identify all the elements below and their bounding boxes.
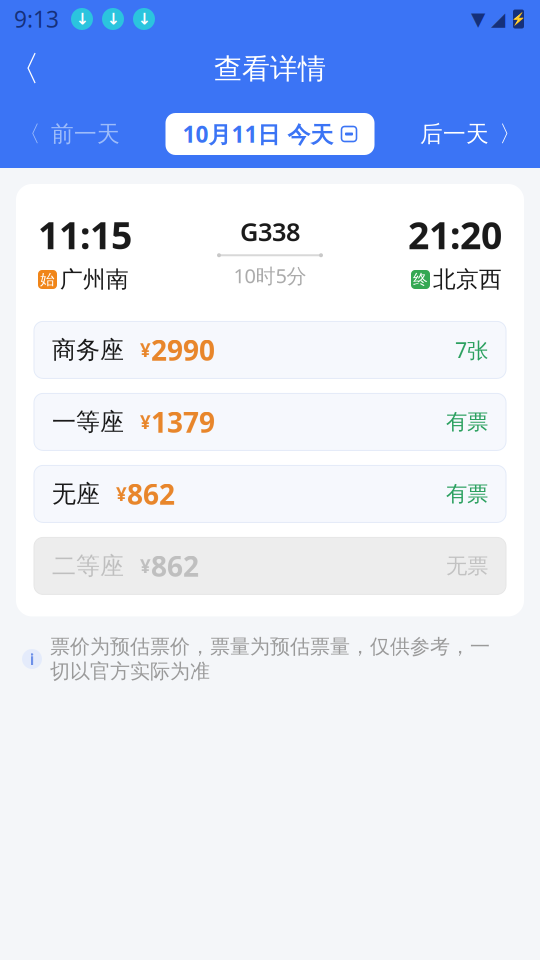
staticText: G338 [240, 215, 300, 248]
staticText: i [29, 648, 34, 670]
staticText: 查看详情 [214, 52, 326, 86]
staticText: ¥ [140, 337, 151, 362]
staticText: 后一天 [420, 120, 489, 148]
staticText: 〉 [499, 120, 522, 148]
staticText: 广州南 [60, 266, 129, 293]
staticText: 9:13 [14, 4, 59, 34]
staticText: ¥ [140, 409, 151, 434]
staticText: 862 [127, 475, 175, 512]
staticText: ↓ [137, 10, 150, 28]
button[interactable]: 二等座 [34, 537, 506, 594]
staticText: 〈 [18, 120, 41, 148]
staticText: 票价为预估票价，票量为预估票量，仅供参考，一切以官方实际为准 [50, 634, 490, 683]
staticText: ¥ [140, 553, 151, 578]
button[interactable]: 返回 [0, 46, 46, 92]
staticText: 有票 [446, 481, 488, 507]
button[interactable]: 10月11日 今天 [165, 113, 374, 155]
staticText: 11:15 [38, 210, 132, 260]
button[interactable]: 后一天 [402, 112, 540, 156]
staticText: 二等座 [52, 551, 124, 581]
button[interactable]: 〈 [0, 112, 138, 156]
staticText: 862 [151, 547, 199, 584]
staticText: ↓ [75, 10, 88, 28]
staticText: 终 [413, 270, 428, 288]
staticText: ¥ [116, 481, 127, 506]
staticText: ↓ [106, 10, 119, 28]
staticText: 无座 [52, 479, 100, 509]
staticText: ◢ [491, 8, 505, 30]
staticText: 〈 [5, 48, 40, 90]
staticText: 10月11日 今天 [182, 119, 333, 149]
button[interactable]: 一等座 [34, 393, 506, 450]
staticText: 始 [40, 270, 55, 288]
staticText: 10时5分 [233, 262, 306, 289]
staticText: 一等座 [52, 407, 124, 437]
staticText: 前一天 [51, 120, 120, 148]
staticText: 无票 [446, 553, 488, 579]
button[interactable]: 商务座 [34, 321, 506, 378]
staticText: 1379 [151, 403, 215, 440]
staticText: ▼ [471, 8, 485, 30]
button[interactable]: 无座 [34, 465, 506, 522]
staticText: 北京西 [433, 266, 502, 293]
staticText: 商务座 [52, 335, 124, 365]
staticText: 有票 [446, 409, 488, 435]
staticText: 2990 [151, 331, 215, 368]
staticText: 21:20 [408, 210, 502, 260]
staticText: ⚡ [511, 12, 526, 26]
staticText: 7张 [455, 336, 488, 364]
